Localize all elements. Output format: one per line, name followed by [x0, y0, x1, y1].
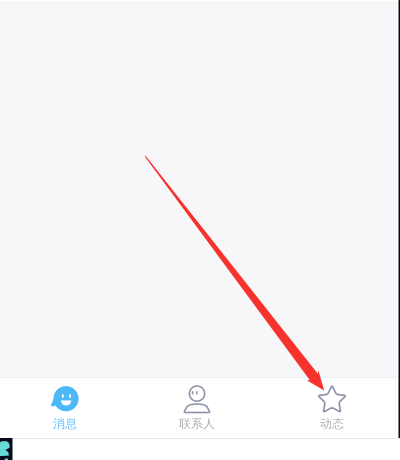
button[interactable]: 消息: [0, 377, 130, 438]
button[interactable]: 联系人: [130, 377, 264, 438]
button[interactable]: 动态: [264, 377, 400, 438]
staticText: 消息: [53, 416, 77, 431]
staticText: 联系人: [179, 416, 215, 431]
staticText: 动态: [320, 416, 344, 431]
